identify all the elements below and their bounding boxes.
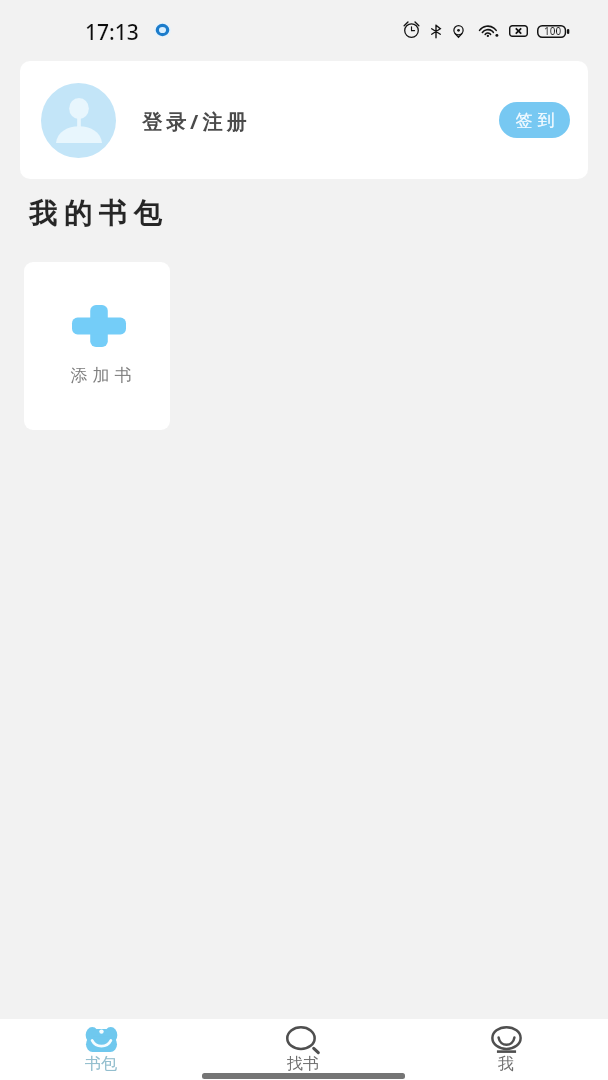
button[interactable]: Backpack bbox=[61, 1019, 141, 1077]
staticText: 我 bbox=[498, 1054, 514, 1074]
button[interactable]: 签到 bbox=[499, 102, 570, 138]
button[interactable]: Me bbox=[466, 1019, 546, 1077]
staticText: 100 bbox=[544, 24, 562, 38]
button[interactable]: 添加书 bbox=[24, 262, 170, 430]
staticText: 找书 bbox=[287, 1054, 319, 1074]
button[interactable]: Search books bbox=[263, 1019, 343, 1077]
staticText: 添加书 bbox=[68, 365, 134, 386]
staticText: 17:13 bbox=[85, 18, 139, 47]
button[interactable]: 登录/注册 bbox=[20, 61, 588, 179]
staticText: 签到 bbox=[513, 110, 557, 131]
staticText: 登录/注册 bbox=[142, 108, 251, 135]
staticText: 我的书包 bbox=[29, 196, 169, 231]
staticText: 书包 bbox=[85, 1054, 117, 1074]
